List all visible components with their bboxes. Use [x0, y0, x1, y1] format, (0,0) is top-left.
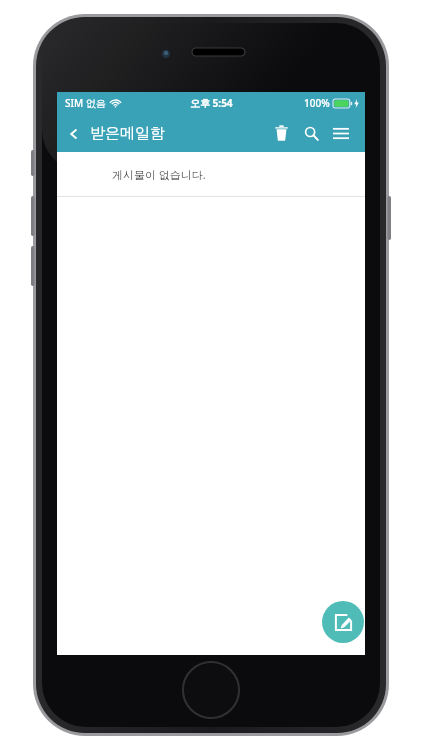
staticText: 게시물이 없습니다.: [112, 167, 206, 182]
other: Back: [67, 127, 81, 141]
staticText: 받은메일함: [90, 124, 165, 143]
staticText: SIM 없음: [65, 96, 106, 110]
button[interactable]: Delete: [266, 118, 296, 148]
button[interactable]: Back: [57, 120, 173, 147]
staticText: 오후 5:54: [190, 96, 233, 110]
button[interactable]: Compose: [322, 601, 364, 643]
button[interactable]: Search: [296, 118, 326, 148]
staticText: 100%: [304, 96, 330, 110]
button[interactable]: Menu: [326, 118, 356, 148]
